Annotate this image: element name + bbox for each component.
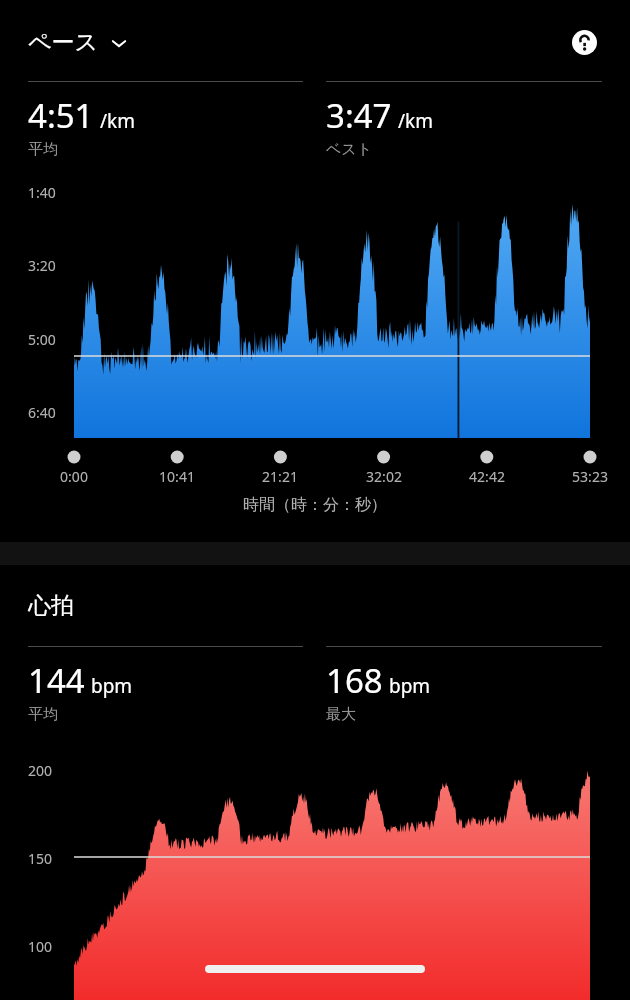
staticText: bpm — [389, 673, 431, 699]
staticText: /km — [398, 108, 433, 134]
staticText: ベスト — [326, 140, 373, 159]
staticText: 0:00 — [40, 467, 108, 486]
button[interactable]: ペース — [28, 26, 128, 59]
button[interactable]: 心拍 — [28, 591, 602, 620]
staticText: 32:02 — [350, 467, 418, 486]
staticText: 168 — [326, 658, 383, 703]
staticText: 3:20 — [28, 256, 56, 275]
staticText: 100 — [28, 937, 53, 956]
staticText: 42:42 — [453, 467, 521, 486]
staticText: 21:21 — [246, 467, 314, 486]
button[interactable]: Help — [566, 24, 602, 60]
staticText: 53:23 — [556, 467, 624, 486]
staticText: 6:40 — [28, 403, 56, 422]
staticText: bpm — [91, 673, 133, 699]
staticText: 平均 — [28, 140, 58, 159]
staticText: 1:40 — [28, 183, 56, 202]
staticText: 時間（時：分：秒） — [243, 495, 387, 515]
staticText: 150 — [28, 849, 53, 868]
staticText: 200 — [28, 761, 53, 780]
staticText: 最大 — [326, 705, 356, 724]
staticText: 3:47 — [326, 93, 392, 138]
staticText: 心拍 — [28, 591, 74, 620]
staticText: 平均 — [28, 705, 58, 724]
staticText: ペース — [28, 28, 99, 57]
staticText: 4:51 — [28, 93, 94, 138]
staticText: 5:00 — [28, 330, 56, 349]
staticText: 144 — [28, 658, 85, 703]
staticText: /km — [100, 108, 135, 134]
staticText: 10:41 — [143, 467, 211, 486]
